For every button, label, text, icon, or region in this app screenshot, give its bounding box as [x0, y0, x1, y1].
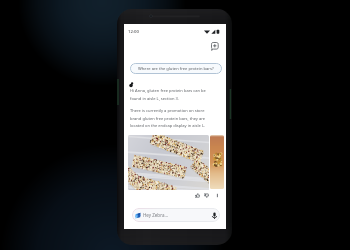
staticText: Hi Anna, gluten free protein bars can be…: [130, 88, 213, 101]
button[interactable]: Granola bars photo: [128, 135, 209, 190]
staticText: There is currently a promotion on store …: [130, 108, 213, 128]
button[interactable]: Bad response: [204, 193, 209, 198]
staticText: 12:00: [128, 28, 139, 34]
button[interactable]: New chat: [211, 42, 219, 51]
button[interactable]: More options: [215, 193, 220, 198]
button[interactable]: Good response: [195, 193, 200, 198]
button[interactable]: Voice input: [212, 212, 217, 219]
staticText: Where are the gluten free protein bars?: [138, 66, 214, 72]
button[interactable]: Granola cluster photo: [210, 135, 224, 189]
button[interactable]: Hey Zebra...: [132, 208, 220, 222]
staticText: Hey Zebra...: [143, 212, 169, 218]
button[interactable]: Where are the gluten free protein bars?: [130, 63, 222, 74]
